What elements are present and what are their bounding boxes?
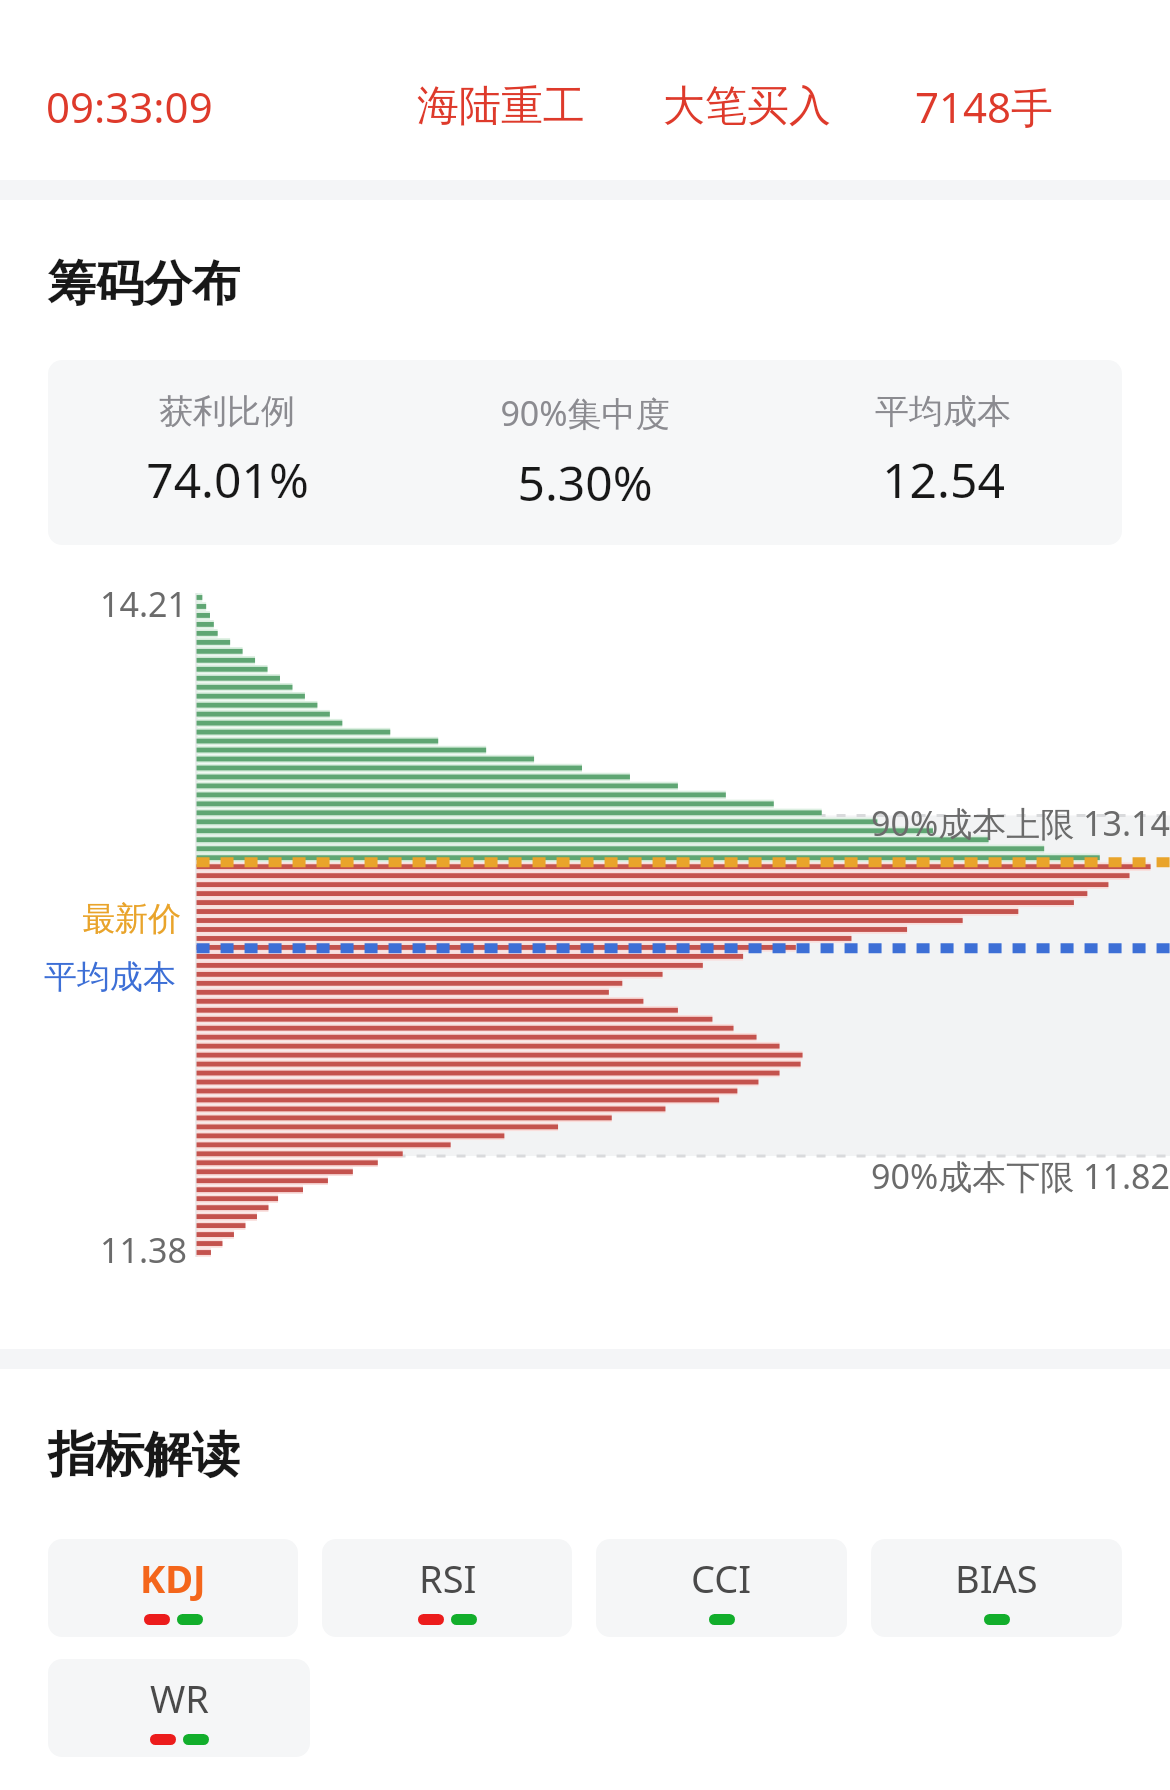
- staticText: 最新价: [82, 898, 181, 940]
- button[interactable]: CCI: [596, 1539, 847, 1637]
- button[interactable]: RSI: [322, 1539, 572, 1637]
- staticText: 09:33:09: [46, 78, 213, 135]
- staticText: 14.21: [100, 581, 187, 627]
- staticText: BIAS: [955, 1552, 1038, 1604]
- button[interactable]: WR: [48, 1659, 310, 1757]
- staticText: KDJ: [140, 1552, 206, 1604]
- staticText: 12.54: [882, 447, 1005, 512]
- staticText: 获利比例: [159, 390, 295, 433]
- staticText: 海陆重工: [417, 80, 585, 133]
- button[interactable]: BIAS: [871, 1539, 1122, 1637]
- button[interactable]: KDJ: [48, 1539, 298, 1637]
- staticText: RSI: [419, 1552, 477, 1604]
- staticText: WR: [150, 1672, 209, 1724]
- staticText: 筹码分布: [48, 254, 240, 314]
- staticText: 90%成本上限 13.14: [871, 800, 1170, 846]
- staticText: 90%成本下限 11.82: [871, 1153, 1170, 1199]
- staticText: 90%集中度: [500, 390, 670, 436]
- staticText: 平均成本: [44, 956, 176, 998]
- staticText: 大笔买入: [663, 80, 831, 133]
- staticText: 7148手: [915, 78, 1054, 135]
- staticText: 指标解读: [48, 1425, 240, 1485]
- staticText: 5.30%: [517, 450, 653, 515]
- staticText: 74.01%: [146, 447, 309, 512]
- staticText: 平均成本: [875, 390, 1011, 433]
- staticText: 11.38: [100, 1227, 187, 1273]
- button[interactable]: 获利比例: [48, 360, 1122, 545]
- staticText: CCI: [691, 1552, 752, 1604]
